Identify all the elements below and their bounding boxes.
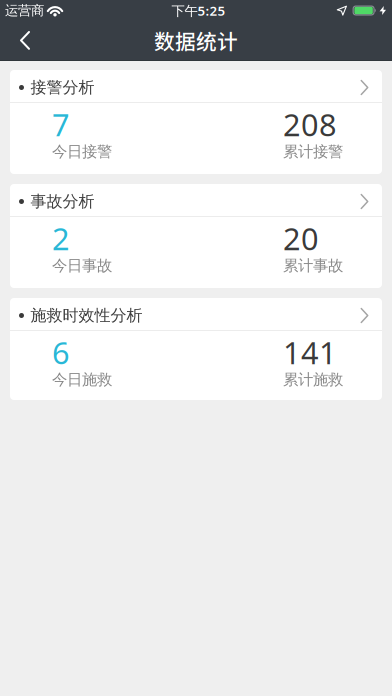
button[interactable]: 接警分析	[10, 70, 382, 174]
staticText: 141	[283, 332, 337, 373]
staticText: 下午5:25	[171, 2, 225, 19]
staticText: 事故分析	[30, 192, 94, 211]
staticText: 运营商	[5, 2, 44, 19]
staticText: 今日事故	[52, 256, 112, 275]
staticText: 施救时效性分析	[30, 306, 142, 325]
staticText: 接警分析	[30, 78, 94, 97]
staticText: 6	[52, 332, 70, 373]
staticText: 208	[283, 104, 337, 145]
staticText: 7	[52, 104, 70, 145]
staticText: 累计施救	[283, 370, 343, 389]
button[interactable]: 施救时效性分析	[10, 298, 382, 400]
staticText: 累计接警	[283, 142, 343, 161]
staticText: 数据统计	[154, 25, 238, 55]
button[interactable]: 事故分析	[10, 184, 382, 288]
staticText: 2	[52, 218, 70, 259]
staticText: 今日施救	[52, 370, 112, 389]
button[interactable]: 返回	[0, 20, 52, 61]
staticText: 20	[283, 218, 319, 259]
staticText: 今日接警	[52, 142, 112, 161]
staticText: 累计事故	[283, 256, 343, 275]
